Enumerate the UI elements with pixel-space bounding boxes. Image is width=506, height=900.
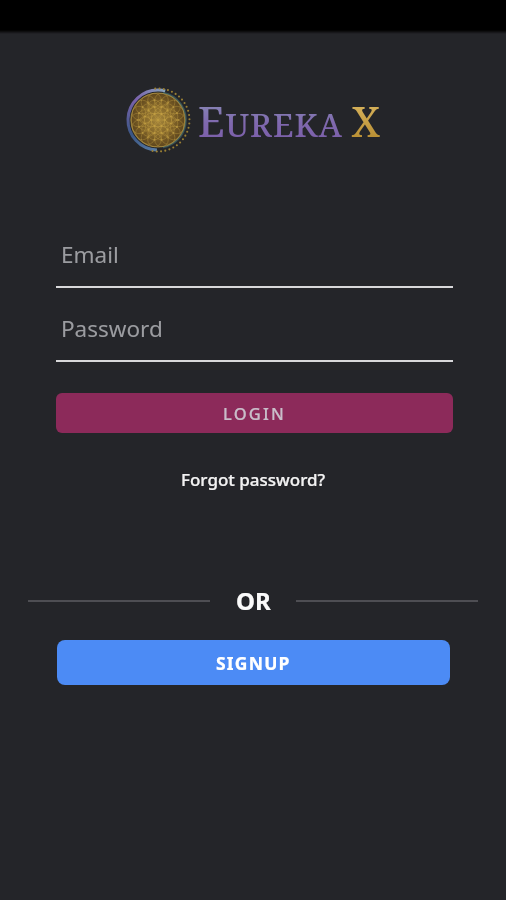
button[interactable]: LOGIN <box>56 393 453 433</box>
staticText: Email <box>61 239 119 270</box>
staticText: OR <box>236 584 271 610</box>
button[interactable]: SIGNUP <box>57 640 450 685</box>
staticText: SIGNUP <box>216 651 291 675</box>
button[interactable]: Forgot password? <box>0 464 506 494</box>
staticText: Password <box>61 313 163 344</box>
staticText: Forgot password? <box>181 468 326 491</box>
staticText: EUREKA X <box>198 92 382 149</box>
staticText: LOGIN <box>223 402 287 424</box>
button[interactable]: Password <box>56 314 453 362</box>
button[interactable]: Email <box>56 240 453 288</box>
